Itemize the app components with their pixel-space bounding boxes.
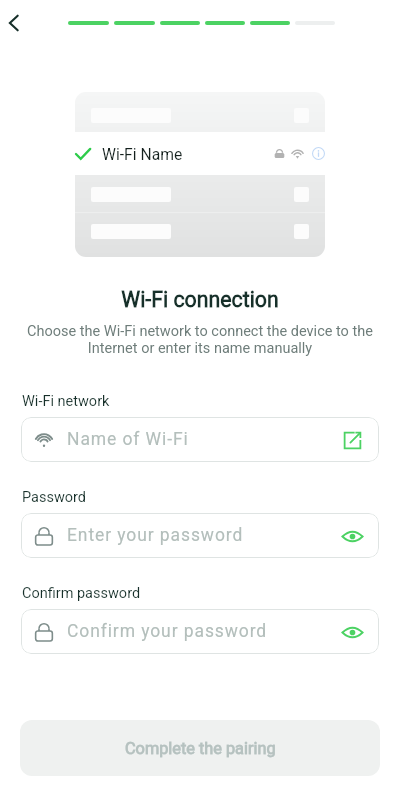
button[interactable]: Show password: [332, 612, 372, 652]
staticText: Name of Wi-Fi: [67, 429, 332, 450]
staticText: Wi-Fi network: [22, 393, 110, 410]
button[interactable]: Wi-Fi Name: [60, 132, 340, 175]
button[interactable]: Confirm your password: [21, 609, 379, 654]
staticText: Wi-Fi Name: [102, 145, 183, 163]
staticText: Choose the Wi-Fi network to connect the …: [22, 323, 378, 357]
staticText: Complete the pairing: [125, 739, 276, 758]
button[interactable]: Complete the pairing: [20, 720, 380, 776]
button[interactable]: Enter your password: [21, 513, 379, 558]
staticText: Confirm password: [22, 585, 141, 602]
button[interactable]: Open network list: [332, 420, 372, 460]
button[interactable]: Show password: [332, 516, 372, 556]
staticText: Wi-Fi connection: [0, 287, 400, 312]
button[interactable]: Back: [0, 5, 33, 40]
button[interactable]: Name of Wi-Fi: [21, 417, 379, 462]
staticText: Confirm your password: [67, 621, 332, 642]
staticText: Password: [22, 489, 87, 506]
staticText: Enter your password: [67, 525, 332, 546]
